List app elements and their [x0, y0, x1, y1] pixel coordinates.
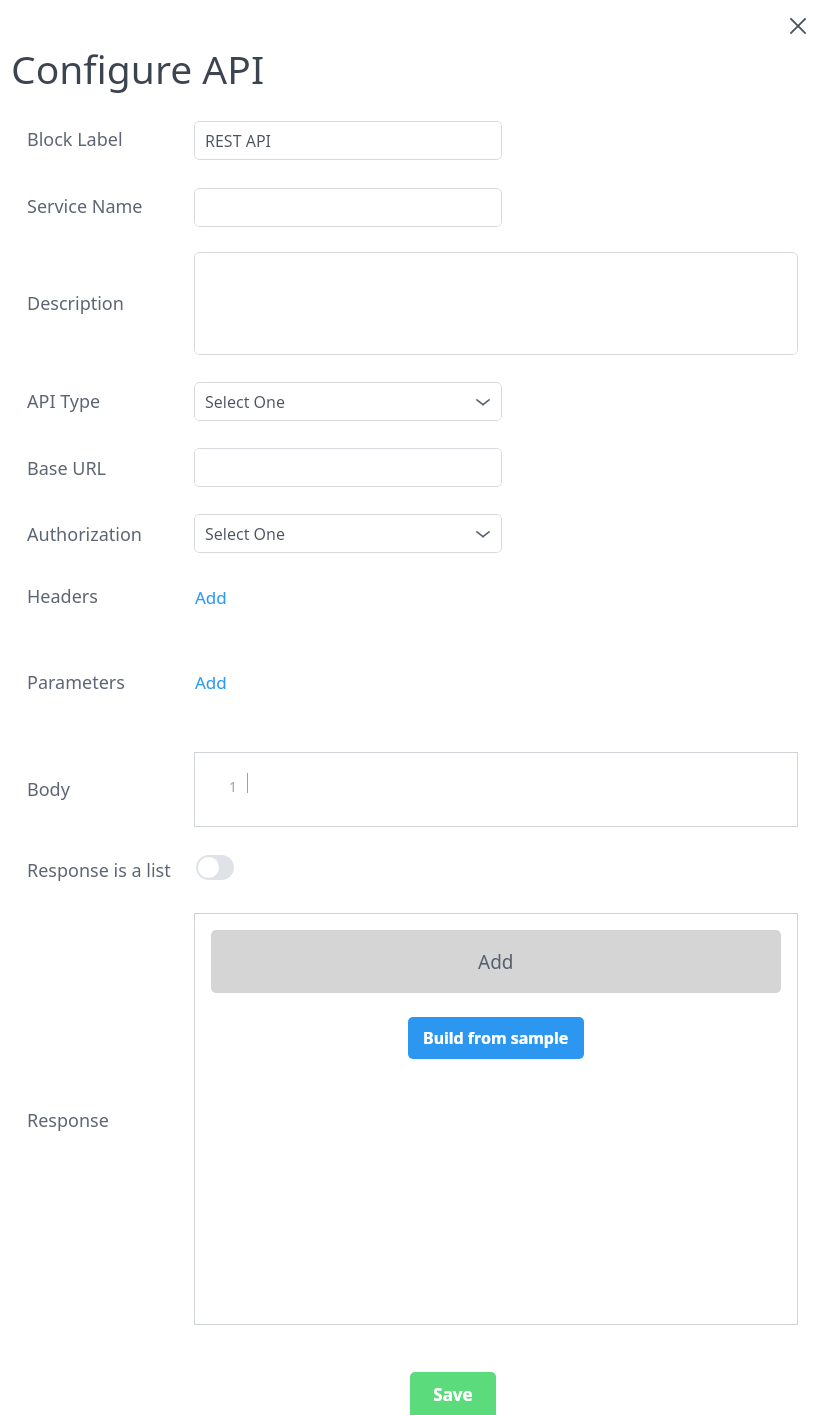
button[interactable]: [194, 188, 502, 227]
staticText: Save: [433, 1383, 473, 1406]
button[interactable]: Close: [778, 6, 818, 46]
button[interactable]: [194, 448, 502, 487]
button[interactable]: REST API: [194, 121, 502, 160]
staticText: Service Name: [27, 194, 143, 219]
staticText: Build from sample: [423, 1027, 569, 1049]
staticText: Base URL: [27, 456, 107, 481]
staticText: Authorization: [27, 522, 142, 547]
button[interactable]: Response is a list toggle: [196, 855, 234, 880]
staticText: Configure API: [11, 42, 265, 95]
button[interactable]: Save: [410, 1372, 496, 1415]
button[interactable]: Build from sample: [408, 1017, 584, 1059]
staticText: Response is a list: [27, 858, 171, 883]
button[interactable]: Select One: [194, 514, 502, 553]
button[interactable]: Add: [211, 930, 781, 993]
staticText: Add: [195, 671, 227, 694]
button[interactable]: 1: [194, 752, 798, 827]
staticText: API Type: [27, 389, 101, 414]
staticText: REST API: [205, 130, 272, 152]
staticText: Block Label: [27, 127, 123, 152]
staticText: 1: [229, 777, 238, 796]
staticText: Description: [27, 291, 124, 316]
staticText: Body: [27, 777, 70, 802]
staticText: Select One: [205, 391, 285, 413]
button[interactable]: [194, 252, 798, 355]
staticText: Select One: [205, 523, 285, 545]
staticText: Response: [27, 1108, 109, 1133]
button[interactable]: Add: [188, 580, 234, 615]
staticText: Add: [195, 586, 227, 609]
staticText: Parameters: [27, 670, 125, 695]
staticText: Headers: [27, 584, 98, 609]
button[interactable]: Select One: [194, 382, 502, 421]
button[interactable]: Add: [188, 665, 234, 700]
staticText: Add: [478, 949, 514, 975]
